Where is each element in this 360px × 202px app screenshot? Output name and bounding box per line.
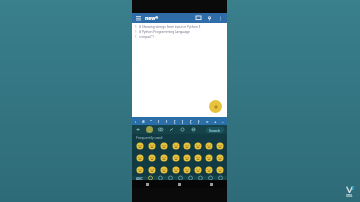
- button[interactable]: Emoji: [158, 140, 170, 152]
- button[interactable]: Back: [135, 126, 142, 133]
- staticText: VITA: [346, 194, 353, 198]
- button[interactable]: Emoji: [146, 126, 153, 133]
- button[interactable]: Back: [132, 180, 163, 188]
- button[interactable]: Home: [163, 180, 195, 188]
- button[interactable]: Emoji: [203, 152, 214, 164]
- staticText: ]: [182, 119, 184, 124]
- staticText: 1: [135, 30, 137, 34]
- button[interactable]: -: [219, 117, 227, 125]
- button[interactable]: Emoji: [181, 164, 192, 176]
- button[interactable]: Emoji: [134, 140, 146, 152]
- button[interactable]: Emoji: [158, 152, 170, 164]
- button[interactable]: Emoji: [134, 164, 146, 176]
- button[interactable]: Emoji: [146, 140, 158, 152]
- button[interactable]: Run: [195, 15, 202, 22]
- staticText: ): [166, 119, 168, 124]
- staticText: }: [198, 119, 200, 124]
- staticText: 1: [135, 25, 137, 29]
- button[interactable]: Clipboard: [190, 126, 197, 133]
- staticText: # Showing strings from input in Python 3: [139, 25, 201, 29]
- button[interactable]: Emoji category: [185, 176, 195, 180]
- button[interactable]: Emoji: [170, 152, 181, 164]
- staticText: =: [206, 119, 209, 124]
- button[interactable]: Emoji: [146, 164, 158, 176]
- button[interactable]: Sticker: [157, 126, 164, 133]
- button[interactable]: Recents: [195, 180, 227, 188]
- staticText: Frequently used: [136, 135, 163, 140]
- button[interactable]: GIF: [168, 126, 175, 133]
- staticText: ": [150, 119, 152, 124]
- staticText: (: [158, 119, 160, 124]
- staticText: x=input(''): [139, 35, 154, 39]
- button[interactable]: Emoji: [146, 152, 158, 164]
- staticText: +: [214, 119, 217, 124]
- button[interactable]: Emoji: [181, 140, 192, 152]
- button[interactable]: Settings: [179, 126, 186, 133]
- button[interactable]: Emoji: [203, 164, 214, 176]
- button[interactable]: :: [132, 117, 139, 125]
- button[interactable]: Emoji: [203, 140, 214, 152]
- button[interactable]: Emoji: [170, 140, 181, 152]
- button[interactable]: Emoji category: [165, 176, 175, 180]
- button[interactable]: Emoji: [214, 140, 225, 152]
- button[interactable]: Emoji: [192, 164, 203, 176]
- button[interactable]: Emoji: [158, 164, 170, 176]
- staticText: -: [222, 119, 224, 124]
- staticText: 1: [135, 35, 137, 39]
- staticText: #: [142, 119, 145, 124]
- staticText: # Python Programming Language: [139, 30, 190, 34]
- button[interactable]: Emoji category: [175, 176, 185, 180]
- button[interactable]: ": [147, 117, 155, 125]
- button[interactable]: More options: [217, 15, 224, 22]
- staticText: new*: [145, 15, 159, 22]
- button[interactable]: Emoji: [134, 152, 146, 164]
- button[interactable]: +: [211, 117, 219, 125]
- button[interactable]: Run code: [209, 100, 222, 113]
- button[interactable]: Emoji: [192, 140, 203, 152]
- button[interactable]: ): [163, 117, 171, 125]
- button[interactable]: Emoji category: [145, 176, 155, 180]
- button[interactable]: Emoji: [181, 152, 192, 164]
- staticText: [: [174, 119, 176, 124]
- button[interactable]: (: [155, 117, 163, 125]
- button[interactable]: ]: [179, 117, 187, 125]
- button[interactable]: =: [203, 117, 211, 125]
- button[interactable]: Emoji category: [195, 176, 205, 180]
- staticText: ABC: [136, 176, 143, 180]
- button[interactable]: Emoji category: [205, 176, 215, 180]
- button[interactable]: ABC: [134, 176, 145, 180]
- button[interactable]: [: [171, 117, 179, 125]
- button[interactable]: }: [195, 117, 203, 125]
- button[interactable]: Menu: [135, 15, 142, 22]
- button[interactable]: {: [187, 117, 195, 125]
- button[interactable]: Emoji category: [215, 176, 225, 180]
- button[interactable]: Emoji: [214, 164, 225, 176]
- button[interactable]: Emoji: [214, 152, 225, 164]
- button[interactable]: Emoji: [170, 164, 181, 176]
- staticText: :: [135, 119, 137, 124]
- button[interactable]: Emoji category: [155, 176, 165, 180]
- button[interactable]: Search: [206, 127, 224, 133]
- staticText: Search: [209, 128, 221, 133]
- staticText: {: [190, 119, 192, 124]
- button[interactable]: Emoji: [192, 152, 203, 164]
- button[interactable]: Location: [206, 15, 213, 22]
- button[interactable]: #: [139, 117, 147, 125]
